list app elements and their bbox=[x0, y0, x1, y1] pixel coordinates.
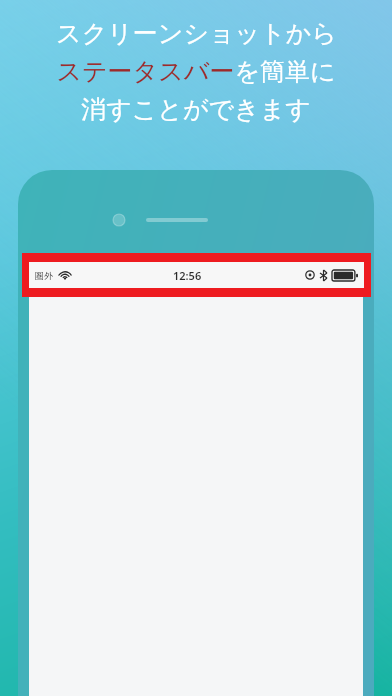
button[interactable]: Status bar highlight bbox=[22, 253, 371, 297]
staticText: ステータスバーを簡単に bbox=[56, 56, 336, 87]
staticText: 消すことができます bbox=[81, 94, 311, 125]
staticText: 圏外 bbox=[35, 270, 53, 281]
staticText: スクリーンショットから bbox=[56, 18, 337, 49]
staticText: 12:56 bbox=[173, 268, 202, 283]
